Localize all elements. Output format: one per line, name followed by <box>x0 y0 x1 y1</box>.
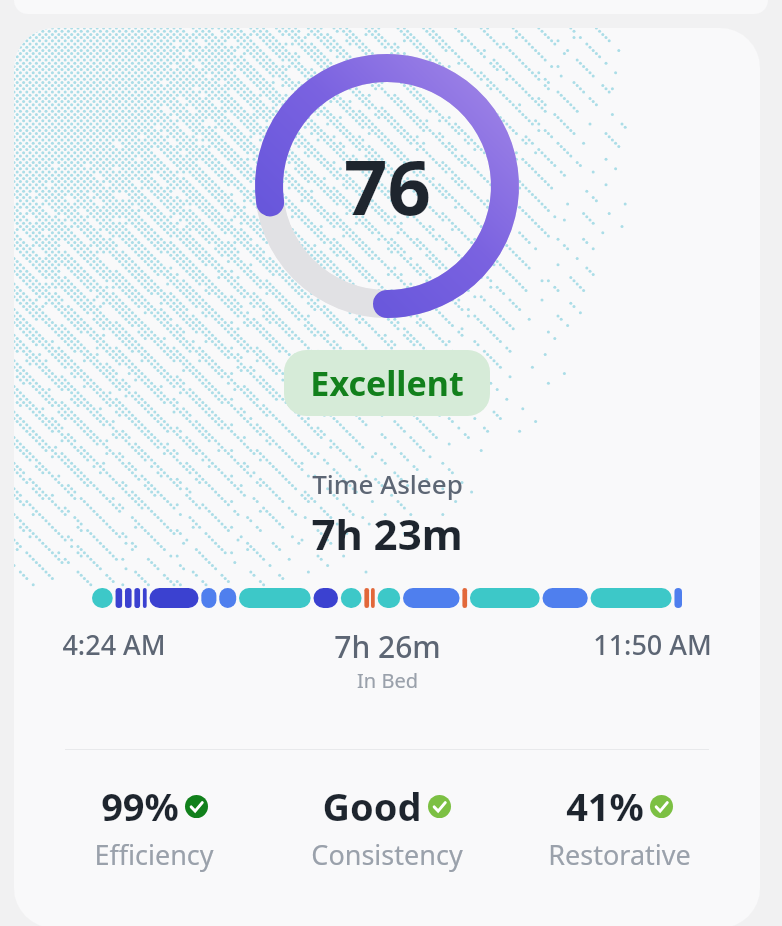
staticText: Good <box>322 780 422 832</box>
button[interactable]: Consistency Good <box>270 780 503 873</box>
staticText: 7h 23m <box>311 505 463 562</box>
staticText: Time Asleep <box>312 466 463 501</box>
staticText: 76 <box>344 134 431 238</box>
staticText: 4:24 AM <box>62 626 166 663</box>
button[interactable]: 76 <box>14 28 760 926</box>
button[interactable]: Efficiency 99% <box>38 780 270 873</box>
staticText: 99% <box>101 780 179 832</box>
staticText: 11:50 AM <box>593 626 712 663</box>
button[interactable]: Restorative 41% <box>503 780 736 873</box>
staticText: Restorative <box>548 836 691 873</box>
staticText: Efficiency <box>94 836 214 873</box>
button[interactable]: Excellent <box>284 350 490 416</box>
staticText: Excellent <box>310 360 464 406</box>
staticText: Consistency <box>311 836 463 873</box>
staticText: 7h 26m <box>334 626 441 667</box>
staticText: In Bed <box>357 667 418 694</box>
staticText: 41% <box>566 780 644 832</box>
